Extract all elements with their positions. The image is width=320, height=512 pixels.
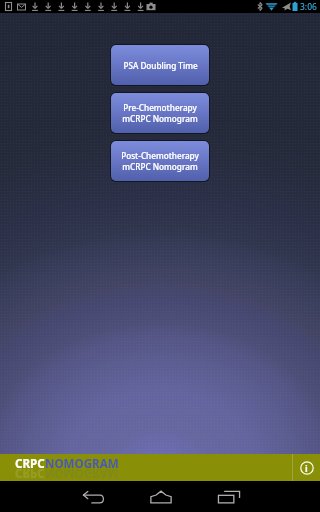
staticText: CRPC [15,469,45,481]
staticText: CRPC [15,456,45,472]
staticText: 3:06 [300,1,317,13]
staticText: Pre-Chemotherapy mCRPC Nomogram [122,102,198,124]
button[interactable]: Info [293,454,320,481]
button[interactable]: Home [130,481,192,512]
staticText: NOMOGRAM [45,469,119,481]
staticText: NOMOGRAM [45,456,119,472]
staticText: PSA Doubling Time [123,60,198,71]
button[interactable]: PSA Doubling Time [111,45,209,85]
staticText: i [305,462,308,474]
staticText: Post-Chemotherapy mCRPC Nomogram [121,150,199,172]
button[interactable]: Post-Chemotherapy mCRPC Nomogram [111,141,209,181]
button[interactable]: Recents [198,481,260,512]
button[interactable]: Back [63,481,125,512]
button[interactable]: Pre-Chemotherapy mCRPC Nomogram [111,93,209,133]
